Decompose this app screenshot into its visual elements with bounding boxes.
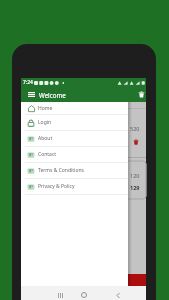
staticText: 120: [130, 172, 140, 179]
staticText: About: [38, 135, 53, 142]
button[interactable]: Home: [78, 289, 90, 300]
button[interactable]: Contact: [21, 147, 128, 163]
button[interactable]: About: [21, 131, 128, 147]
staticText: 7:24: [23, 79, 33, 86]
button[interactable]: Home: [21, 102, 128, 115]
button[interactable]: Recents: [54, 289, 66, 300]
button[interactable]: Open navigation drawer: [25, 88, 38, 101]
staticText: Welcome: [39, 91, 66, 99]
button[interactable]: Privacy & Policy: [21, 179, 128, 195]
button[interactable]: Login: [21, 115, 128, 131]
staticText: Login: [38, 119, 52, 126]
button[interactable]: Delete: [135, 88, 148, 101]
button[interactable]: Back: [112, 289, 124, 300]
staticText: Privacy & Policy: [38, 183, 75, 190]
staticText: Contact: [38, 151, 57, 158]
button[interactable]: Terms & Conditions: [21, 163, 128, 179]
staticText: Terms & Conditions: [38, 167, 84, 174]
staticText: 520: [130, 125, 140, 132]
staticText: Home: [38, 105, 53, 112]
staticText: 129: [130, 184, 140, 191]
